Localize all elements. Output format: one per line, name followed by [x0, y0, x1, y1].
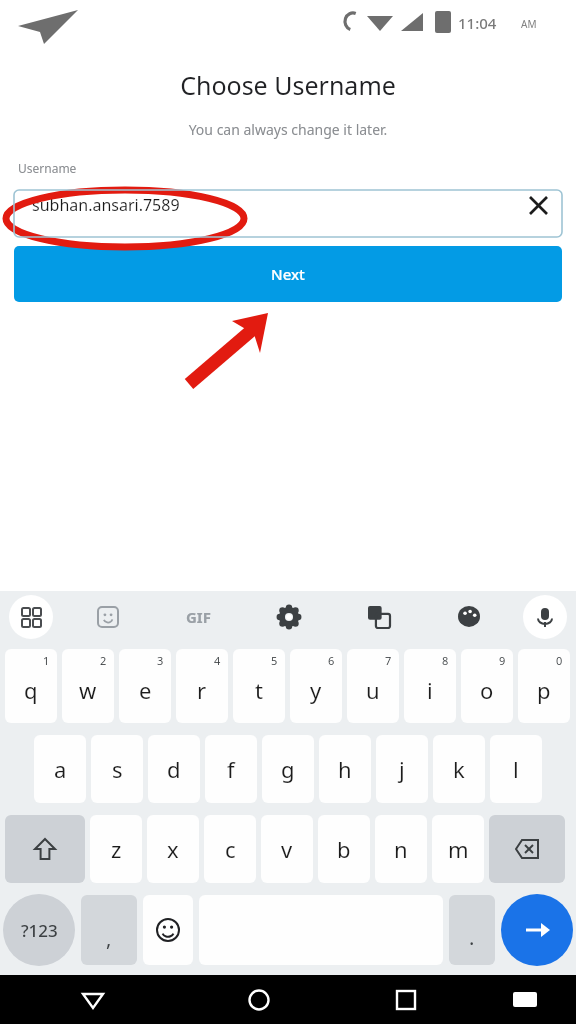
staticText: d: [167, 754, 181, 784]
button[interactable]: l: [490, 735, 542, 803]
button[interactable]: c: [204, 815, 256, 883]
staticText: t: [255, 675, 263, 705]
button[interactable]: Recents: [332, 975, 479, 1024]
button[interactable]: Settings: [244, 591, 334, 643]
button[interactable]: Themes: [424, 591, 514, 643]
staticText: Next: [271, 264, 305, 284]
staticText: GIF: [186, 607, 211, 627]
button[interactable]: Apps: [9, 595, 53, 639]
staticText: 5: [271, 653, 278, 668]
button[interactable]: 5: [233, 649, 285, 723]
staticText: u: [366, 675, 380, 705]
button[interactable]: b: [318, 815, 370, 883]
button[interactable]: 0: [518, 649, 570, 723]
button[interactable]: v: [261, 815, 313, 883]
button[interactable]: Enter: [501, 894, 573, 966]
button[interactable]: g: [262, 735, 314, 803]
staticText: s: [112, 754, 123, 784]
button[interactable]: 6: [290, 649, 342, 723]
staticText: v: [281, 834, 293, 864]
staticText: 8: [442, 653, 449, 668]
button[interactable]: Backspace: [489, 815, 565, 883]
button[interactable]: 3: [119, 649, 171, 723]
button[interactable]: 2: [62, 649, 114, 723]
staticText: l: [513, 754, 519, 784]
staticText: e: [139, 675, 152, 705]
button[interactable]: d: [148, 735, 200, 803]
staticText: 9: [499, 653, 506, 668]
staticText: y: [310, 675, 322, 705]
button[interactable]: Next: [14, 246, 562, 302]
button[interactable]: j: [376, 735, 428, 803]
button[interactable]: 7: [347, 649, 399, 723]
staticText: 1: [43, 653, 50, 668]
button[interactable]: z: [90, 815, 142, 883]
staticText: o: [480, 675, 494, 705]
button[interactable]: a: [34, 735, 86, 803]
staticText: g: [281, 754, 295, 784]
staticText: ?123: [21, 919, 58, 942]
staticText: f: [227, 754, 235, 784]
button[interactable]: ,: [81, 895, 137, 965]
staticText: Username: [18, 160, 77, 176]
button[interactable]: Translate: [334, 591, 424, 643]
staticText: r: [197, 675, 207, 705]
staticText: ,: [106, 925, 112, 952]
button[interactable]: Sticker: [62, 591, 153, 643]
staticText: j: [399, 754, 405, 784]
staticText: 4: [214, 653, 221, 668]
staticText: q: [24, 675, 38, 705]
button[interactable]: x: [147, 815, 199, 883]
button[interactable]: m: [432, 815, 484, 883]
staticText: 2: [100, 653, 107, 668]
button[interactable]: Voice input: [523, 595, 567, 639]
staticText: x: [167, 834, 179, 864]
button[interactable]: ?123: [3, 894, 75, 966]
button[interactable]: f: [205, 735, 257, 803]
staticText: Choose Username: [0, 68, 576, 102]
staticText: a: [54, 754, 67, 784]
button[interactable]: Clear: [518, 185, 558, 225]
staticText: 7: [385, 653, 392, 668]
staticText: AM: [521, 17, 537, 31]
button[interactable]: h: [319, 735, 371, 803]
staticText: c: [225, 834, 236, 864]
button[interactable]: Switch keyboard: [479, 975, 570, 1024]
button[interactable]: subhan.ansari.7589: [14, 182, 562, 228]
button[interactable]: Emoji: [143, 895, 193, 965]
button[interactable]: .: [449, 895, 495, 965]
staticText: k: [453, 754, 465, 784]
button[interactable]: GIF: [153, 591, 244, 643]
button[interactable]: Back: [0, 975, 185, 1024]
button[interactable]: Home: [185, 975, 332, 1024]
staticText: subhan.ansari.7589: [32, 194, 180, 216]
button[interactable]: 4: [176, 649, 228, 723]
staticText: n: [394, 834, 408, 864]
staticText: b: [337, 834, 351, 864]
staticText: i: [427, 675, 433, 705]
staticText: z: [111, 834, 122, 864]
staticText: 0: [556, 653, 563, 668]
staticText: 3: [157, 653, 164, 668]
button[interactable]: n: [375, 815, 427, 883]
staticText: 6: [328, 653, 335, 668]
button[interactable]: 9: [461, 649, 513, 723]
staticText: .: [469, 924, 475, 951]
staticText: 11:04: [458, 13, 497, 33]
staticText: p: [537, 675, 551, 705]
button[interactable]: 8: [404, 649, 456, 723]
button[interactable]: 1: [5, 649, 57, 723]
button[interactable]: Shift: [5, 815, 85, 883]
button[interactable]: k: [433, 735, 485, 803]
staticText: You can always change it later.: [0, 120, 576, 139]
staticText: w: [79, 675, 97, 705]
staticText: h: [338, 754, 352, 784]
button[interactable]: s: [91, 735, 143, 803]
staticText: m: [448, 834, 469, 864]
